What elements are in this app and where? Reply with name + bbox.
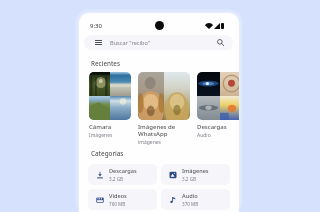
staticText: 370 MB bbox=[182, 201, 199, 207]
button[interactable]: Descargas bbox=[88, 164, 157, 185]
staticText: Imágenes bbox=[182, 167, 209, 175]
staticText: Buscar "recibo" bbox=[110, 39, 151, 47]
button[interactable]: Imágenes bbox=[161, 164, 230, 185]
other: Menú bbox=[95, 40, 102, 45]
staticText: Descargas bbox=[109, 167, 137, 175]
button[interactable]: Vídeos bbox=[88, 189, 157, 210]
staticText: Cámara bbox=[89, 123, 112, 131]
button[interactable]: Imágenes de WhatsApp bbox=[138, 72, 190, 146]
button[interactable]: Menú bbox=[84, 35, 233, 50]
staticText: Audio bbox=[182, 192, 198, 200]
staticText: Categorías bbox=[91, 149, 124, 158]
staticText: 9:30 bbox=[90, 22, 102, 30]
staticText: Audio bbox=[197, 132, 211, 139]
staticText: 3,2 GB bbox=[182, 176, 197, 182]
staticText: 760 MB bbox=[109, 201, 126, 207]
staticText: Imágenes de WhatsApp bbox=[138, 123, 176, 138]
staticText: Imágenes bbox=[89, 132, 113, 139]
staticText: 3,2 GB bbox=[109, 176, 124, 182]
button[interactable]: Cámara bbox=[89, 72, 131, 139]
staticText: Descargas bbox=[197, 123, 227, 131]
staticText: imágenes bbox=[138, 139, 161, 146]
staticText: Vídeos bbox=[109, 192, 127, 200]
other: Buscar bbox=[217, 39, 224, 46]
button[interactable]: Audio bbox=[161, 189, 230, 210]
button[interactable]: Descargas bbox=[197, 72, 239, 139]
staticText: Recientes bbox=[91, 59, 121, 68]
